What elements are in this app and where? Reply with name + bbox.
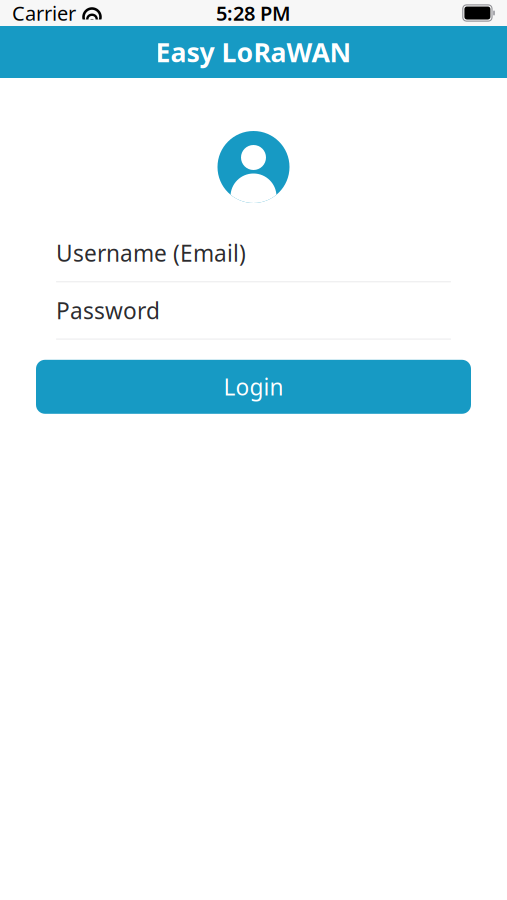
- staticText: Easy LoRaWAN: [155, 34, 351, 70]
- staticText: Carrier: [12, 0, 76, 26]
- button[interactable]: Login: [36, 360, 471, 414]
- button[interactable]: Username (Email): [56, 225, 451, 282]
- staticText: 5:28 PM: [216, 0, 291, 26]
- button[interactable]: Password: [56, 282, 451, 340]
- staticText: Password: [56, 295, 160, 325]
- staticText: Username (Email): [56, 238, 246, 268]
- staticText: Login: [223, 372, 283, 402]
